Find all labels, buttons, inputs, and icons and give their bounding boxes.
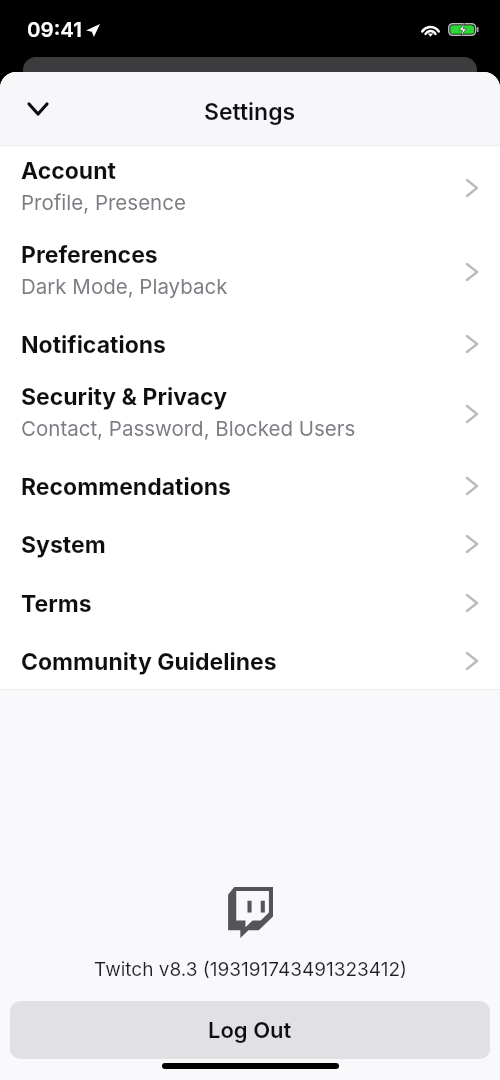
staticText: Recommendations (21, 473, 231, 501)
button[interactable]: Security & Privacy (0, 372, 500, 462)
button[interactable]: Log Out (10, 1001, 490, 1059)
button[interactable]: Notifications (0, 320, 500, 372)
staticText: Dark Mode, Playback (21, 274, 228, 299)
staticText: 09:41 (27, 17, 82, 42)
staticText: Preferences (21, 241, 158, 269)
staticText: Security & Privacy (21, 383, 228, 411)
button[interactable]: Recommendations (0, 462, 500, 520)
staticText: Profile, Presence (21, 190, 186, 215)
staticText: System (21, 531, 106, 559)
button[interactable]: Collapse (11, 82, 65, 136)
button[interactable]: Community Guidelines (0, 637, 500, 689)
button[interactable]: Terms (0, 579, 500, 637)
button[interactable]: System (0, 520, 500, 579)
staticText: Settings (204, 98, 296, 126)
button[interactable]: Account (0, 146, 500, 230)
staticText: Terms (21, 590, 92, 618)
button[interactable]: Preferences (0, 230, 500, 320)
staticText: Contact, Password, Blocked Users (21, 416, 356, 441)
staticText: Account (21, 157, 116, 185)
staticText: Notifications (21, 331, 166, 359)
staticText: Log Out (208, 1017, 292, 1044)
staticText: Twitch v8.3 (193191743491323412) (94, 958, 407, 981)
staticText: Community Guidelines (21, 648, 277, 676)
